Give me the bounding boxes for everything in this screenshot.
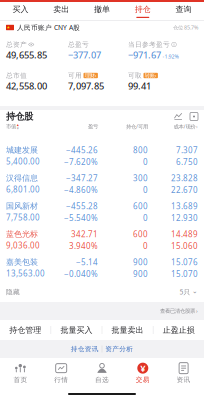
- staticText: 22.670: [171, 184, 198, 195]
- staticText: 49,655.85: [6, 49, 47, 61]
- button[interactable]: 设置: [186, 110, 198, 123]
- staticText: 总市值: [6, 71, 27, 80]
- button[interactable]: 5只: [179, 282, 198, 302]
- staticText: 总资产: [6, 40, 27, 49]
- button[interactable]: ¥: [122, 358, 163, 388]
- staticText: 15.070: [171, 268, 198, 279]
- staticText: 42,558.00: [6, 80, 47, 92]
- button[interactable]: 城建发展: [0, 142, 204, 170]
- button[interactable]: 止盈止损: [153, 320, 204, 340]
- staticText: 止盈止损: [163, 325, 195, 335]
- staticText: −455.28: [66, 201, 98, 211]
- staticText: 900: [133, 268, 148, 279]
- staticText: 人民币账户 CNY A股: [17, 23, 80, 32]
- button[interactable]: 查询: [163, 2, 204, 20]
- staticText: −445.26: [66, 145, 98, 155]
- staticText: ⌄: [192, 287, 198, 295]
- staticText: 900: [133, 257, 148, 267]
- staticText: 自选: [95, 376, 109, 384]
- button[interactable]: ★: [0, 21, 204, 34]
- button[interactable]: 资讯: [163, 358, 204, 388]
- button[interactable]: 买入: [0, 2, 41, 20]
- button[interactable]: 持仓资讯: [68, 340, 102, 358]
- staticText: 15.060: [171, 240, 198, 251]
- staticText: −5.14: [76, 257, 98, 267]
- staticText: 14.489: [171, 229, 198, 239]
- staticText: ▼: [17, 127, 19, 130]
- button[interactable]: 资产分析: [102, 340, 136, 358]
- staticText: −347.27: [66, 173, 98, 183]
- staticText: 仓位 85.7%: [173, 24, 198, 31]
- staticText: 600: [133, 229, 148, 239]
- staticText: −5.540%: [64, 212, 98, 223]
- staticText: 成本/现价: [173, 123, 195, 130]
- staticText: 持仓股: [6, 111, 33, 122]
- staticText: 城建发展: [6, 145, 38, 155]
- staticText: -1.92%: [162, 53, 178, 60]
- staticText: 6,801.00: [6, 184, 40, 195]
- staticText: 13,563.00: [6, 268, 45, 279]
- staticText: 批量卖出: [112, 325, 144, 335]
- staticText: 0: [143, 240, 148, 251]
- staticText: 持仓资讯: [71, 345, 99, 353]
- button[interactable]: 查看已清仓股票: [160, 302, 198, 320]
- staticText: 撤单: [94, 4, 110, 14]
- staticText: 800: [133, 145, 148, 155]
- staticText: 交易: [136, 376, 150, 384]
- button[interactable]: 自选: [82, 358, 122, 388]
- button[interactable]: 批量卖出: [102, 320, 153, 340]
- staticText: 卖出: [53, 4, 69, 14]
- staticText: 当日参考盈亏: [128, 40, 170, 49]
- button[interactable]: 撤单: [82, 2, 122, 20]
- staticText: −4.860%: [64, 184, 98, 195]
- staticText: 买入: [12, 4, 28, 14]
- staticText: −7.620%: [64, 156, 98, 167]
- staticText: 国风新材: [6, 201, 38, 211]
- staticText: 12.930: [171, 212, 198, 223]
- staticText: 0: [143, 184, 148, 195]
- button[interactable]: 隐藏: [6, 282, 20, 302]
- staticText: −0.040%: [64, 268, 98, 279]
- staticText: 可取: [128, 71, 142, 80]
- staticText: −971.67: [128, 49, 161, 61]
- staticText: ›: [196, 123, 198, 130]
- staticText: 批量买入: [60, 325, 92, 335]
- button[interactable]: 卖出: [41, 2, 82, 20]
- staticText: 99.41: [128, 80, 151, 92]
- staticText: 5只: [179, 288, 190, 296]
- staticText: 9,036.00: [6, 240, 40, 251]
- staticText: 6.750: [176, 156, 198, 167]
- staticText: 嘉美包装: [6, 257, 38, 267]
- staticText: 0: [143, 156, 148, 167]
- staticText: 转账: [145, 72, 155, 79]
- staticText: 持仓/可用: [126, 123, 148, 130]
- button[interactable]: 理财: [83, 73, 98, 78]
- button[interactable]: 转账: [143, 73, 158, 78]
- button[interactable]: 批量买入: [51, 320, 102, 340]
- staticText: 资讯: [177, 376, 191, 384]
- staticText: 23.828: [171, 173, 198, 183]
- button[interactable]: 走势: [170, 110, 186, 123]
- staticText: 隐藏: [6, 288, 20, 296]
- staticText: 600: [133, 201, 148, 211]
- staticText: 15.076: [171, 257, 198, 267]
- staticText: 可用: [68, 71, 82, 80]
- button[interactable]: 持仓管理: [0, 320, 51, 340]
- staticText: ▲: [17, 123, 19, 126]
- staticText: ¥: [140, 362, 145, 374]
- button[interactable]: 嘉美包装: [0, 254, 204, 282]
- staticText: 总盈亏: [68, 40, 89, 49]
- button[interactable]: 持仓: [122, 2, 163, 20]
- button[interactable]: 蓝色光标: [0, 226, 204, 254]
- button[interactable]: 汉得信息: [0, 170, 204, 198]
- staticText: 理财: [85, 72, 95, 79]
- staticText: 3.940%: [69, 240, 98, 251]
- staticText: 5,400.00: [6, 156, 40, 167]
- button[interactable]: 首页: [0, 358, 41, 388]
- staticText: 持仓管理: [9, 325, 41, 335]
- button[interactable]: 国风新材: [0, 198, 204, 226]
- button[interactable]: 行情: [41, 358, 82, 388]
- staticText: 蓝色光标: [6, 229, 38, 239]
- staticText: 查询: [176, 4, 192, 14]
- staticText: 7.307: [176, 145, 198, 155]
